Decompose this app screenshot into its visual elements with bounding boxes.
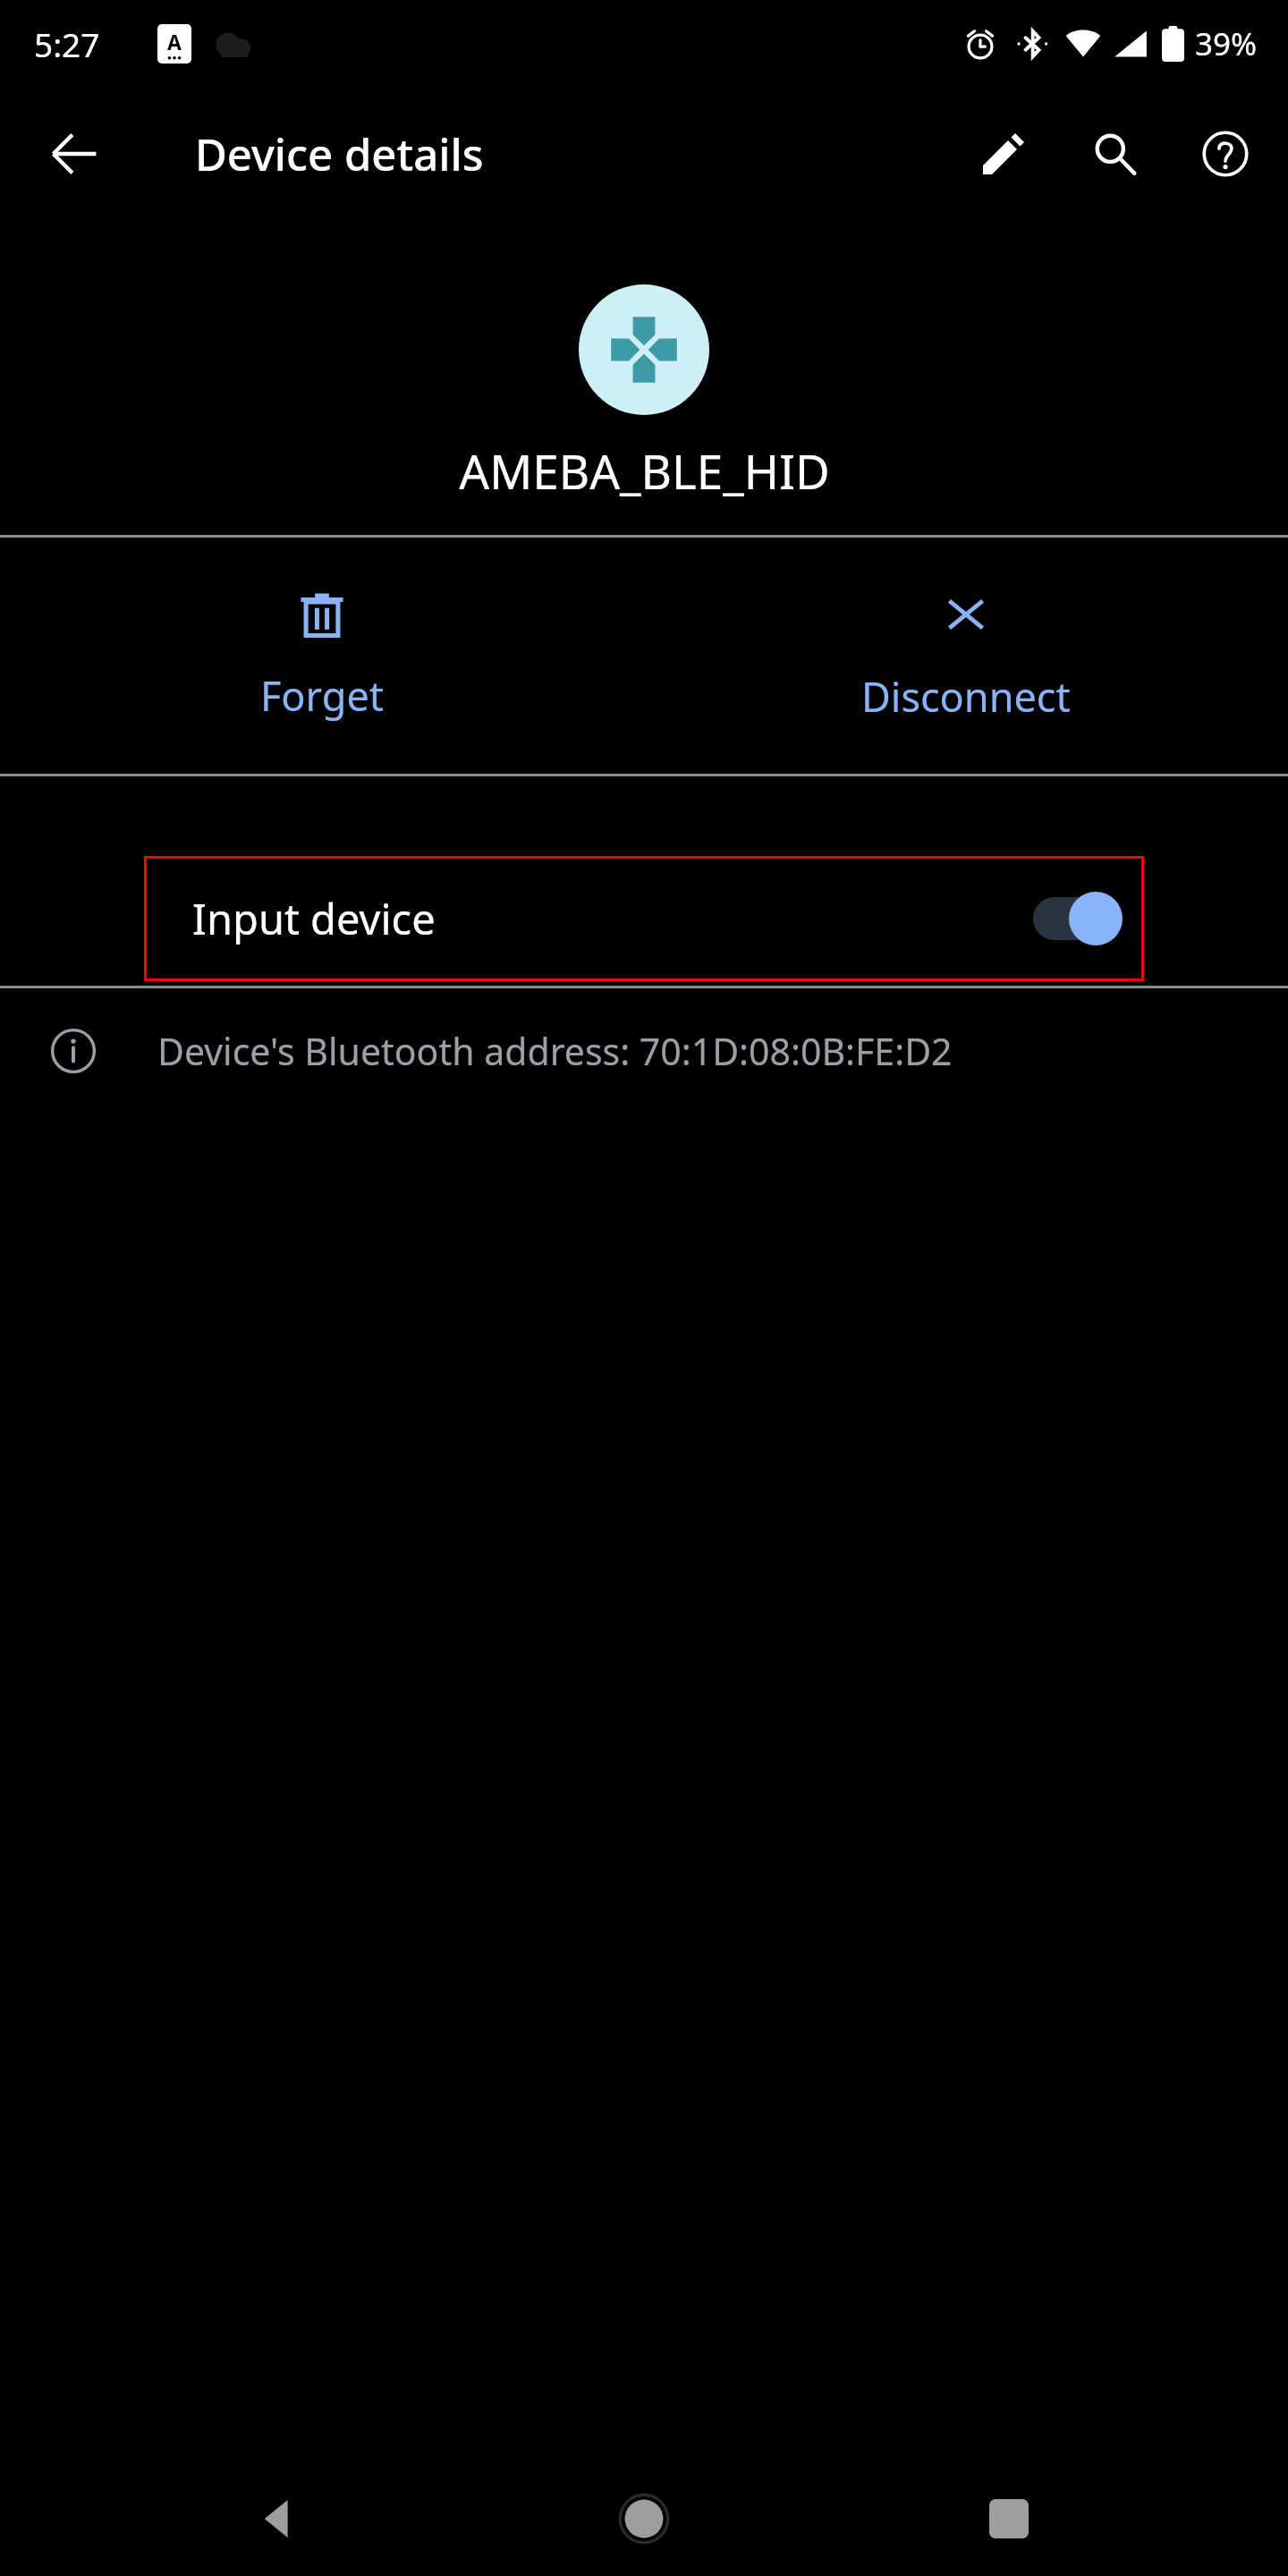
button[interactable]: Help bbox=[1182, 111, 1268, 197]
staticText: A bbox=[167, 28, 182, 55]
button[interactable]: Back bbox=[225, 2465, 333, 2572]
staticText: Device's Bluetooth address: 70:1D:08:0B:… bbox=[157, 1026, 953, 1076]
button[interactable]: Input device bbox=[144, 856, 1144, 981]
staticText: Disconnect bbox=[861, 669, 1071, 724]
staticText: Device details bbox=[195, 124, 484, 184]
button[interactable]: Disconnect bbox=[644, 538, 1288, 774]
staticText: Forget bbox=[260, 668, 385, 723]
button[interactable]: Search bbox=[1072, 111, 1157, 197]
button[interactable]: Forget bbox=[0, 538, 644, 774]
button[interactable]: Edit bbox=[961, 111, 1046, 197]
button[interactable]: Recent apps bbox=[955, 2465, 1063, 2572]
staticText: Input device bbox=[192, 890, 436, 947]
staticText: 39% bbox=[1195, 22, 1258, 65]
button[interactable]: Home bbox=[590, 2465, 698, 2572]
staticText: AMEBA_BLE_HID bbox=[459, 438, 830, 503]
staticText: 5:27 bbox=[34, 21, 100, 66]
button[interactable]: Back bbox=[25, 105, 123, 203]
